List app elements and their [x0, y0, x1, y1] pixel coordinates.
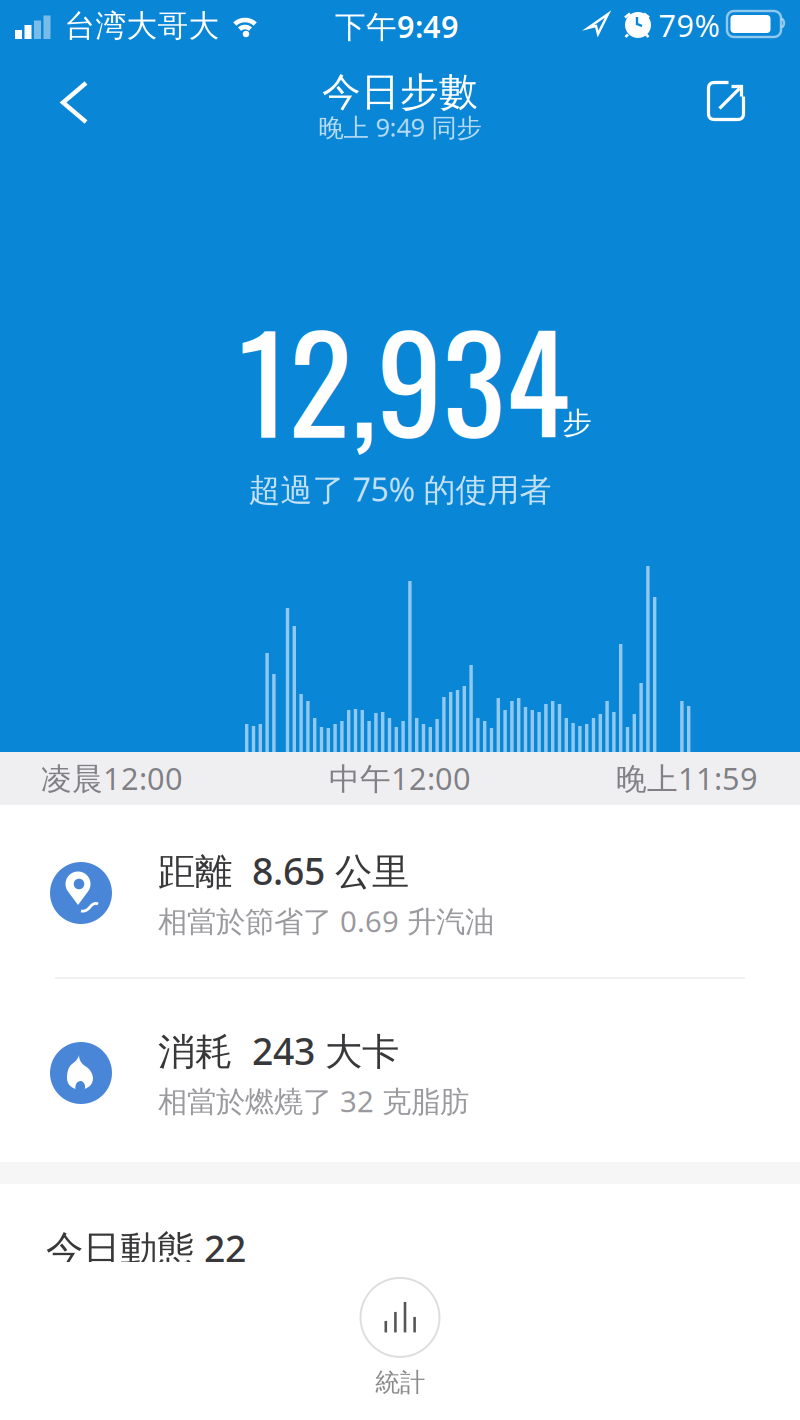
button[interactable]: 消耗 243 大卡	[0, 988, 800, 1158]
staticText: 下午9:49	[335, 6, 459, 46]
staticText: 超過了 75% 的使用者	[248, 468, 551, 510]
button[interactable]: 距離 8.65 公里	[0, 808, 800, 978]
staticText: 台湾大哥大	[64, 7, 219, 45]
staticText: 今日步數	[322, 68, 478, 116]
staticText: 相當於燃燒了 32 克脂肪	[158, 1081, 469, 1120]
button[interactable]: 統計	[344, 1276, 455, 1400]
staticText: 今日動態 22	[46, 1223, 246, 1273]
staticText: 中午12:00	[329, 758, 471, 798]
staticText: 晚上 9:49 同步	[318, 110, 481, 144]
staticText: 距離 8.65 公里	[158, 846, 409, 895]
staticText: 12,934	[238, 280, 569, 476]
staticText: 統計	[375, 1367, 425, 1398]
staticText: 相當於節省了 0.69 升汽油	[158, 901, 494, 940]
staticText: 晚上11:59	[616, 758, 758, 798]
staticText: 消耗 243 大卡	[158, 1026, 399, 1075]
staticText: 79%	[658, 5, 719, 45]
staticText: 步	[562, 405, 591, 441]
button[interactable]: Share	[697, 70, 754, 131]
staticText: 凌晨12:00	[41, 758, 183, 798]
button[interactable]: Back	[56, 83, 100, 127]
